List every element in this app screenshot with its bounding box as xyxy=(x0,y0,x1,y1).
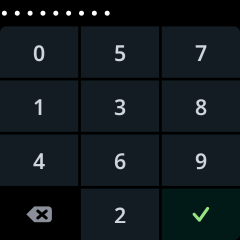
staticText: 3 xyxy=(114,93,126,121)
button[interactable]: 5 xyxy=(81,26,159,78)
staticText: 0 xyxy=(33,39,45,67)
staticText: 6 xyxy=(114,147,126,175)
staticText: 8 xyxy=(195,93,207,121)
staticText: 5 xyxy=(114,39,126,67)
staticText: 4 xyxy=(33,147,45,175)
button[interactable]: Confirm xyxy=(162,189,240,240)
button[interactable]: 8 xyxy=(162,80,240,132)
button[interactable]: Delete xyxy=(0,189,78,240)
button[interactable]: 4 xyxy=(0,135,78,186)
button[interactable]: 1 xyxy=(0,80,78,132)
staticText: 7 xyxy=(195,39,207,67)
staticText: 2 xyxy=(114,201,126,229)
staticText: 9 xyxy=(195,147,207,175)
staticText: 1 xyxy=(33,93,45,121)
button[interactable]: 3 xyxy=(81,80,159,132)
button[interactable]: 0 xyxy=(0,26,78,78)
button[interactable]: 6 xyxy=(81,135,159,186)
button[interactable]: 9 xyxy=(162,135,240,186)
button[interactable]: 7 xyxy=(162,26,240,78)
button[interactable]: 2 xyxy=(81,189,159,240)
